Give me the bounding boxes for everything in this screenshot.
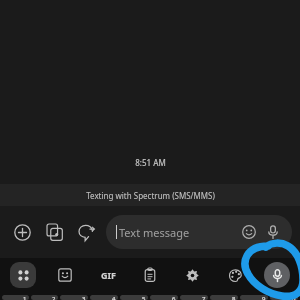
button[interactable]: Apps [10, 262, 36, 288]
button[interactable]: Clipboard [137, 262, 163, 288]
button[interactable]: Settings [179, 262, 205, 288]
staticText: Text message [119, 225, 238, 240]
staticText: 6 [172, 295, 176, 300]
button[interactable]: 6 [150, 295, 178, 300]
staticText: 3 [82, 295, 86, 300]
staticText: 0 [292, 295, 296, 300]
button[interactable]: Theme [222, 262, 248, 288]
button[interactable]: Voice input [262, 221, 284, 243]
button[interactable]: 9 [240, 295, 268, 300]
button[interactable]: Stickers [72, 218, 100, 246]
button[interactable]: GIF [95, 262, 121, 288]
button[interactable]: Add attachment [8, 218, 36, 246]
staticText: 2 [52, 295, 56, 300]
button[interactable]: Emoji [238, 221, 260, 243]
button[interactable]: Gallery [40, 218, 68, 246]
staticText: GIF [101, 269, 116, 281]
staticText: 1 [23, 295, 27, 300]
button[interactable]: 4 [90, 295, 118, 300]
staticText: Texting with Spectrum (SMS/MMS) [86, 190, 215, 201]
button[interactable]: Stickers [52, 262, 78, 288]
button[interactable]: 7 [180, 295, 208, 300]
button[interactable]: 3 [60, 295, 88, 300]
button[interactable]: Text message [106, 215, 292, 249]
staticText: 8:51 AM [135, 157, 166, 168]
button[interactable]: 8 [210, 295, 238, 300]
button[interactable]: Voice typing [264, 262, 290, 288]
button[interactable]: 1 [2, 295, 29, 300]
staticText: 5 [142, 295, 146, 300]
button[interactable]: 5 [120, 295, 148, 300]
staticText: 4 [112, 295, 116, 300]
staticText: 7 [202, 295, 206, 300]
staticText: 9 [262, 295, 266, 300]
button[interactable]: 0 [270, 295, 298, 300]
staticText: 8 [232, 295, 236, 300]
button[interactable]: 2 [31, 295, 58, 300]
